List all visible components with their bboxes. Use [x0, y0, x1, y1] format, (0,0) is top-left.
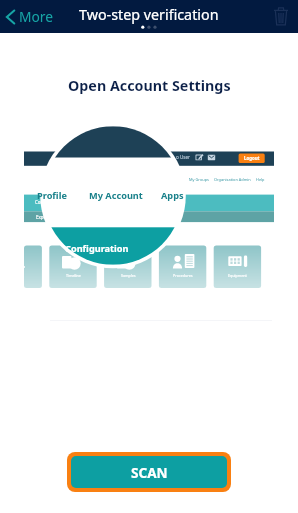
staticText: SCAN — [131, 463, 168, 482]
staticText: Samples — [121, 273, 136, 278]
staticText: Procedures — [173, 273, 193, 278]
staticText: Open Account Settings — [68, 76, 231, 95]
staticText: Timeline — [66, 273, 81, 278]
staticText: More — [19, 7, 54, 26]
staticText: Apps — [161, 189, 184, 202]
staticText: Two-step verification — [79, 5, 219, 24]
staticText: Configuration — [65, 242, 129, 255]
staticText: My Account — [89, 189, 143, 202]
staticText: Config — [35, 199, 49, 205]
staticText: Equipment — [228, 273, 247, 278]
button[interactable]: SCAN — [71, 456, 227, 488]
staticText: Expe — [36, 214, 46, 220]
staticText: My Groups — [189, 177, 209, 182]
button[interactable]: More — [0, 0, 62, 33]
staticText: Profile — [37, 189, 67, 202]
staticText: o User — [176, 154, 191, 160]
staticText: Organisation Admin — [214, 177, 251, 182]
staticText: Logout — [244, 155, 260, 161]
button[interactable]: Delete — [264, 0, 298, 33]
staticText: Help — [256, 177, 265, 182]
